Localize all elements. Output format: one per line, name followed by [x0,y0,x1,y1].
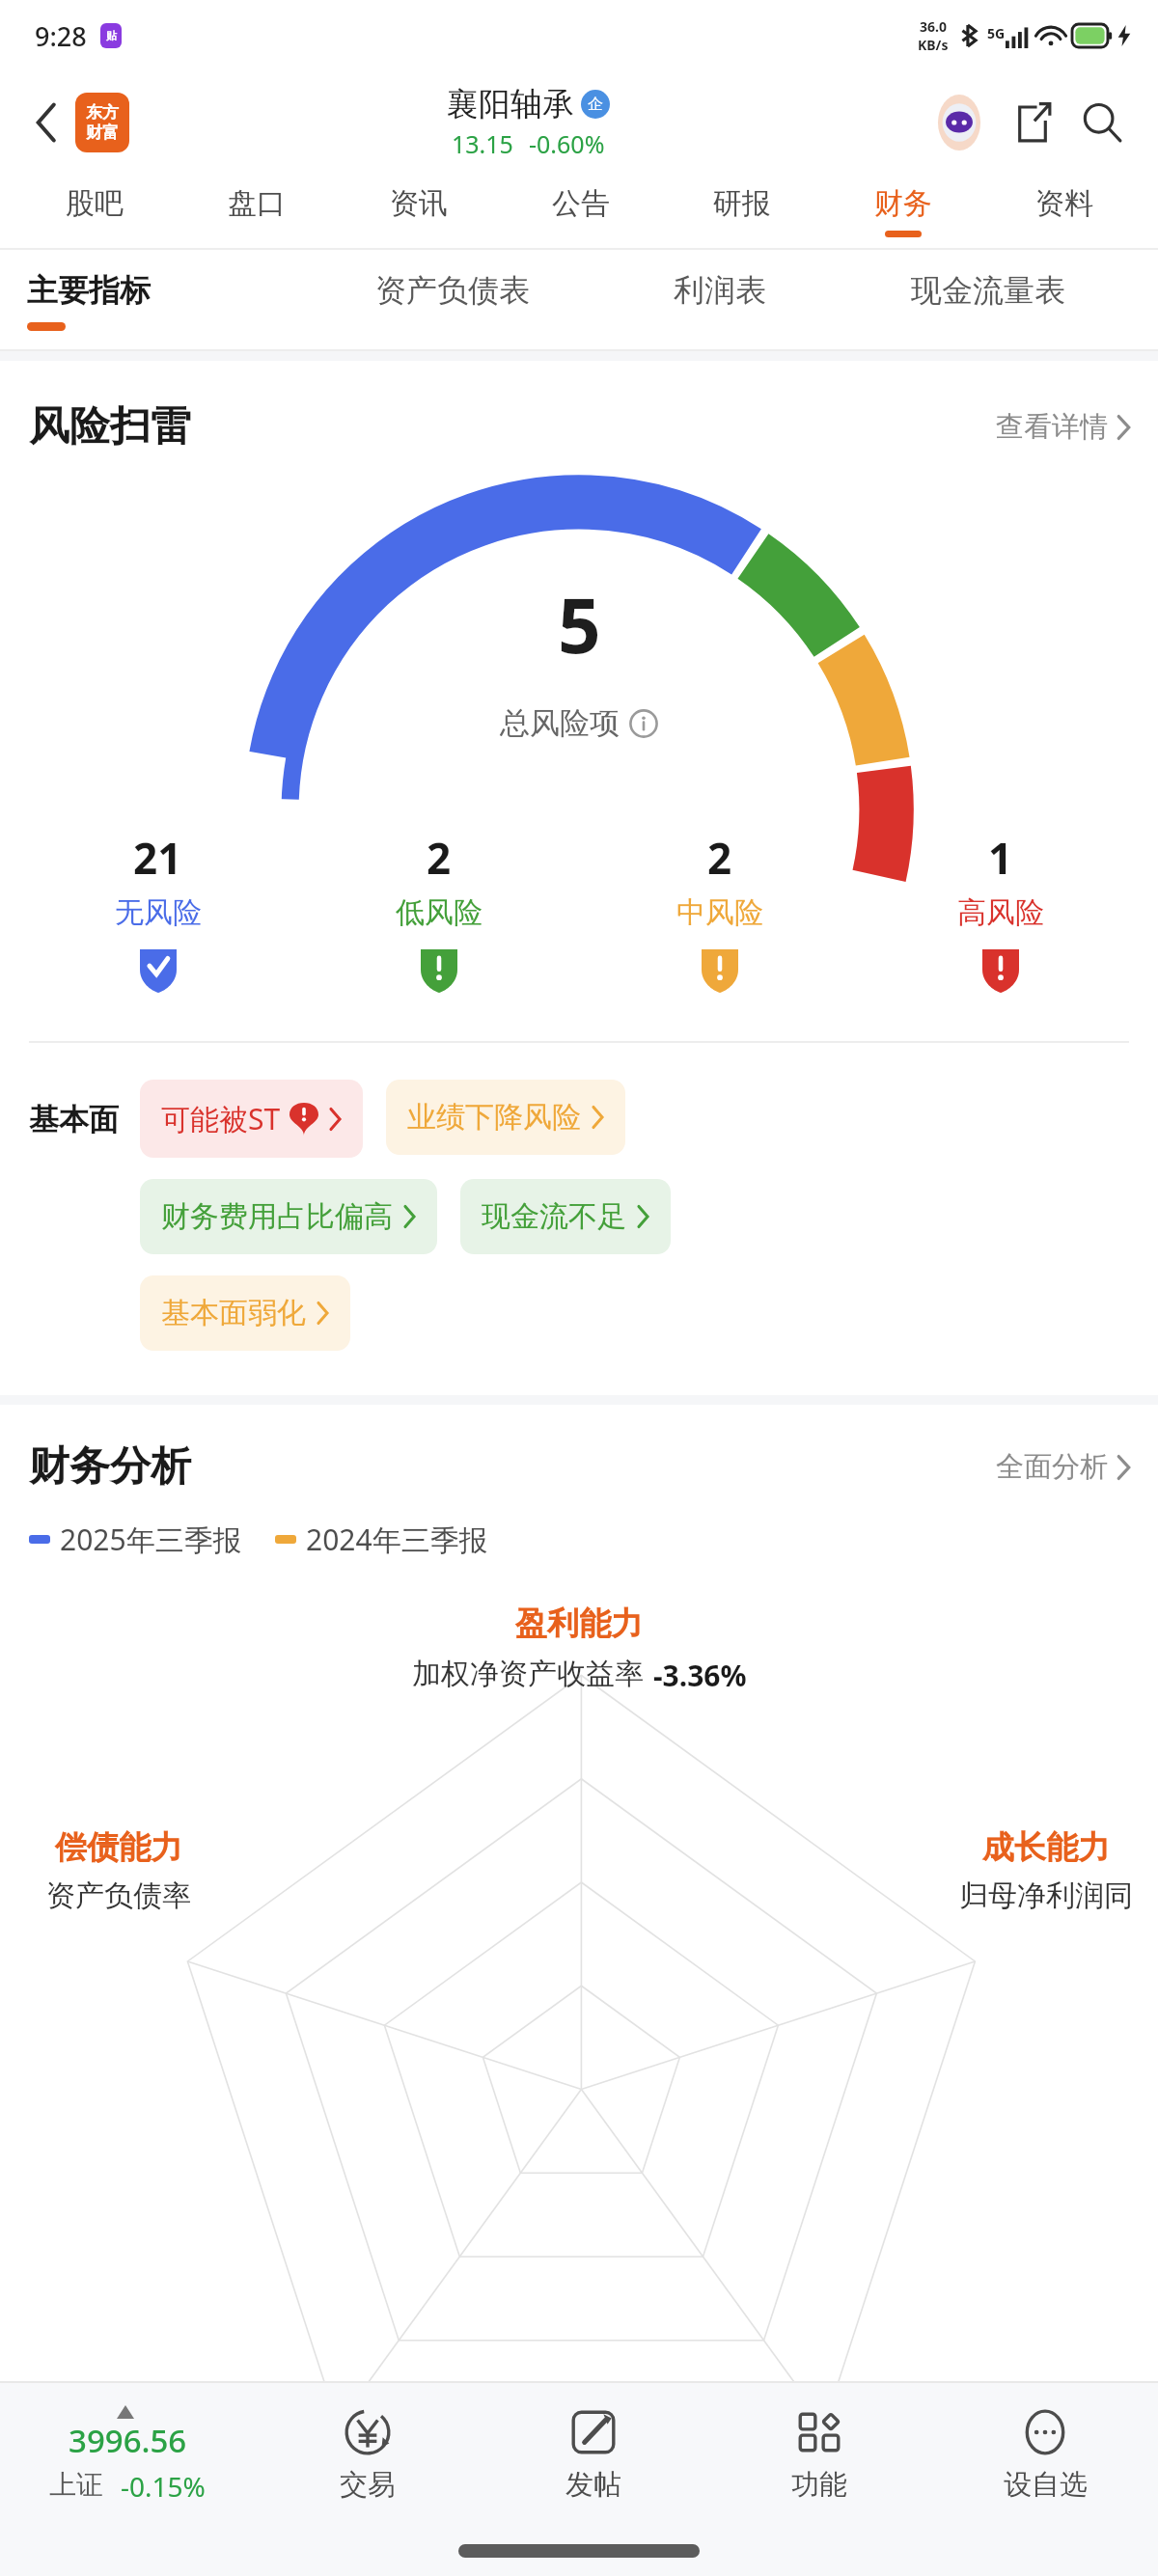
staticText: 现金流量表 [911,271,1065,310]
staticText: 基本面弱化 [161,1295,306,1331]
staticText: 2 [707,829,732,887]
button[interactable]: Search [1075,96,1129,150]
staticText: 无风险 [115,894,202,931]
staticText: 设自选 [1004,2467,1088,2503]
button[interactable]: 2 [298,829,579,993]
staticText: 总风险项 [500,704,620,742]
button[interactable]: 盘口 [176,173,338,250]
staticText: 财务费用占比偏高 [161,1198,393,1235]
staticText: 主要指标 [27,271,151,310]
staticText: 上证 [49,2468,103,2502]
staticText: 贴 [106,29,117,42]
staticText: 中风险 [676,894,763,931]
button[interactable]: Share [1006,96,1060,150]
staticText: 可能被ST [161,1099,281,1138]
staticText: 资产负债率 [46,1877,191,1914]
staticText: 9:28 [35,18,87,54]
staticText: 1 [988,829,1013,887]
button[interactable]: 财务 [822,173,983,250]
staticText: 全面分析 [996,1449,1108,1485]
button[interactable]: 21 [17,829,298,993]
button[interactable]: Back [21,97,71,148]
staticText: 现金流不足 [482,1198,626,1235]
button[interactable]: 设自选 [932,2383,1158,2526]
staticText: 36.0 [920,17,947,36]
button[interactable]: 发帖 [481,2383,706,2526]
button[interactable]: 功能 [706,2383,932,2526]
button[interactable]: 资产负债表 [301,250,603,351]
staticText: 2024年三季报 [306,1520,488,1559]
staticText: -3.36% [653,1656,747,1695]
staticText: 盈利能力 [515,1603,643,1644]
button[interactable]: 公告 [500,173,661,250]
button[interactable]: 财务费用占比偏高 [140,1179,437,1254]
button[interactable]: 全面分析 [996,1449,1131,1485]
staticText: 企 [588,95,603,114]
button[interactable]: 1 [860,829,1141,993]
staticText: 基本面 [29,1101,119,1138]
staticText: 21 [133,829,182,887]
staticText: 资料 [1035,185,1093,222]
button[interactable]: 襄阳轴承 [447,84,610,160]
staticText: 13.15 [452,127,513,160]
button[interactable]: 资料 [983,173,1144,250]
staticText: 财务 [874,185,932,222]
staticText: 高风险 [957,894,1044,931]
staticText: 偿债能力 [55,1827,182,1868]
button[interactable]: 股吧 [14,173,176,250]
staticText: 5 [558,573,601,675]
button[interactable]: 业绩下降风险 [386,1080,625,1155]
button[interactable]: 现金流不足 [460,1179,671,1254]
staticText: 归母净利润同 [959,1877,1133,1914]
staticText: 东方 [86,102,119,123]
staticText: KB/s [918,36,949,54]
button[interactable]: 利润表 [603,250,837,351]
staticText: 盘口 [228,185,286,222]
staticText: 财务分析 [29,1441,191,1493]
staticText: 2 [427,829,452,887]
button[interactable]: 现金流量表 [837,250,1139,351]
button[interactable]: Assistant [928,92,990,153]
staticText: 3996.56 [69,2419,187,2462]
staticText: 研报 [713,185,771,222]
button[interactable]: 交易 [255,2383,481,2526]
staticText: 5G [987,24,1006,42]
staticText: 襄阳轴承 [447,84,574,124]
button[interactable]: 主要指标 [27,250,301,351]
staticText: 发帖 [565,2467,621,2503]
button[interactable]: 可能被ST [140,1080,363,1158]
button[interactable]: 东方 [75,93,129,152]
staticText: 成长能力 [982,1827,1110,1868]
staticText: 加权净资产收益率 [412,1656,644,1692]
staticText: 资产负债表 [375,271,530,310]
staticText: 利润表 [674,271,766,310]
staticText: 公告 [552,185,610,222]
button[interactable]: 2 [579,829,860,993]
button[interactable]: 查看详情 [996,409,1131,445]
staticText: 资讯 [390,185,448,222]
staticText: 股吧 [66,185,124,222]
button[interactable]: 基本面弱化 [140,1275,350,1351]
staticText: 风险扫雷 [29,401,191,452]
staticText: 低风险 [396,894,482,931]
staticText: -0.60% [529,127,605,160]
staticText: 功能 [791,2467,847,2503]
staticText: 财富 [86,123,119,143]
button[interactable]: 3996.56 [0,2383,255,2526]
staticText: -0.15% [121,2468,206,2505]
staticText: 查看详情 [996,409,1108,445]
button[interactable]: 研报 [661,173,822,250]
staticText: 业绩下降风险 [407,1099,581,1136]
button[interactable]: 资讯 [338,173,500,250]
staticText: 2025年三季报 [60,1520,242,1559]
staticText: 交易 [340,2467,396,2503]
